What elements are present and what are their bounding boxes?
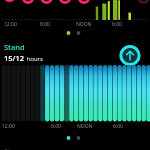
staticText: NOON [76, 21, 92, 28]
staticText: 12:00 [4, 21, 17, 28]
staticText: NOON [77, 123, 93, 130]
button[interactable] [0, 64, 150, 130]
staticText: Steps [4, 146, 24, 150]
staticText: 6:00 [40, 21, 50, 28]
staticText: 12:00 [2, 123, 15, 130]
button[interactable] [0, 0, 150, 28]
staticText: hours [25, 55, 43, 63]
button[interactable]: Stand [0, 39, 110, 65]
staticText: 6:00 [112, 21, 122, 28]
staticText: 15/12 [4, 53, 25, 63]
button[interactable] [118, 44, 142, 68]
staticText: 6:00 [113, 123, 123, 130]
staticText: Stand [4, 42, 25, 52]
staticText: 6:00 [51, 123, 61, 130]
